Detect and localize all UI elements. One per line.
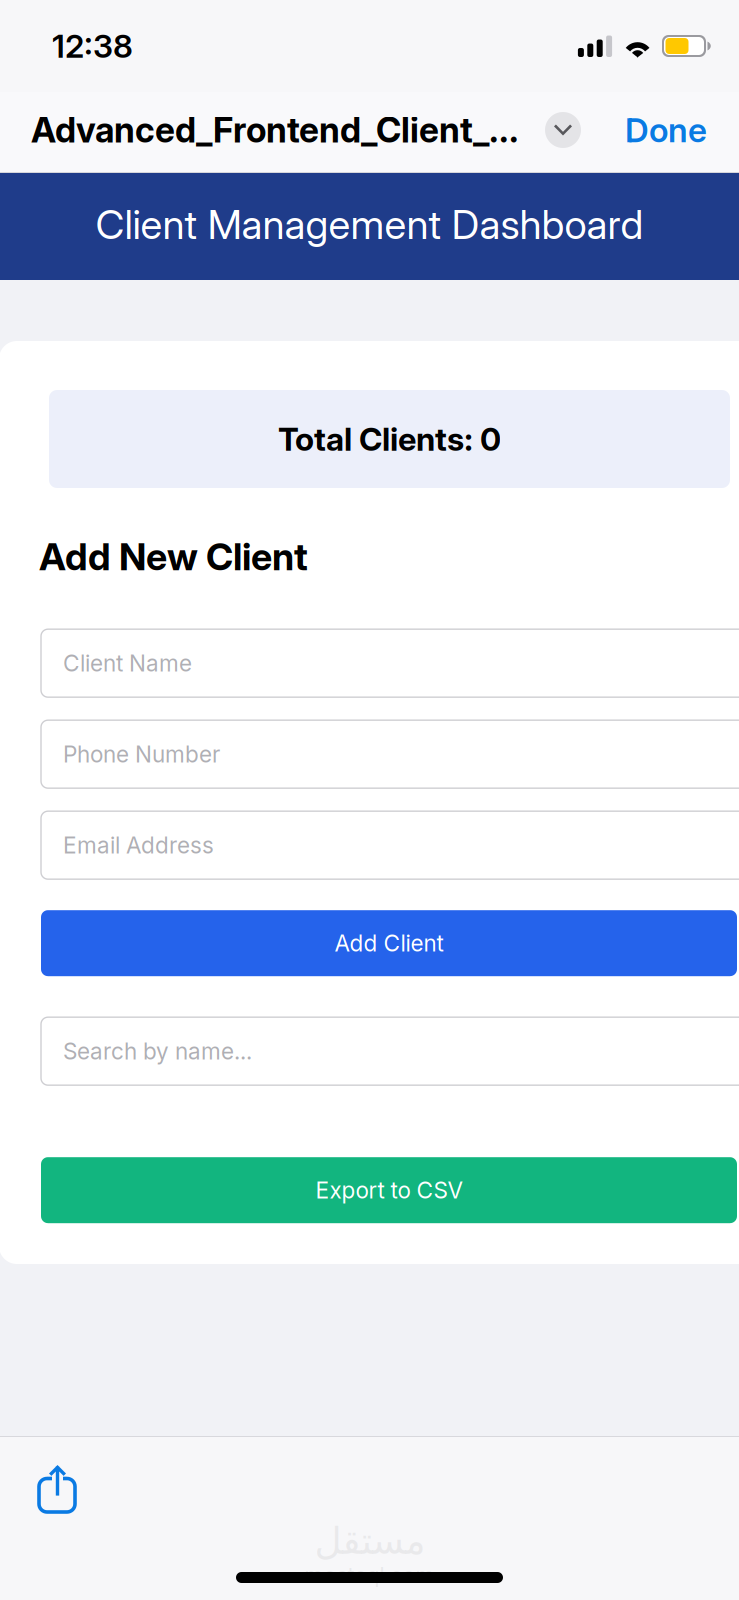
button[interactable]: Collapse page options — [543, 108, 583, 152]
staticText: مستقل — [314, 1519, 425, 1562]
staticText: Export to CSV — [315, 1176, 462, 1204]
button[interactable]: Export to CSV — [41, 1157, 737, 1223]
staticText: Client Name — [63, 649, 192, 677]
staticText: 12:38 — [52, 27, 133, 65]
staticText: Email Address — [63, 831, 214, 859]
button[interactable]: Share — [0, 1436, 98, 1534]
button[interactable]: Add Client — [41, 910, 737, 976]
staticText: mostaql.com — [304, 1562, 434, 1588]
staticText: Phone Number — [63, 740, 220, 768]
staticText: Search by name... — [63, 1037, 252, 1065]
staticText: Add Client — [334, 929, 443, 957]
staticText: Add New Client — [39, 534, 308, 579]
staticText: Advanced_Frontend_Client_... — [31, 109, 519, 151]
staticText: Done — [625, 110, 707, 150]
staticText: Client Management Dashboard — [95, 200, 643, 249]
staticText: Total Clients: 0 — [278, 420, 501, 458]
button[interactable]: Done — [625, 100, 707, 160]
